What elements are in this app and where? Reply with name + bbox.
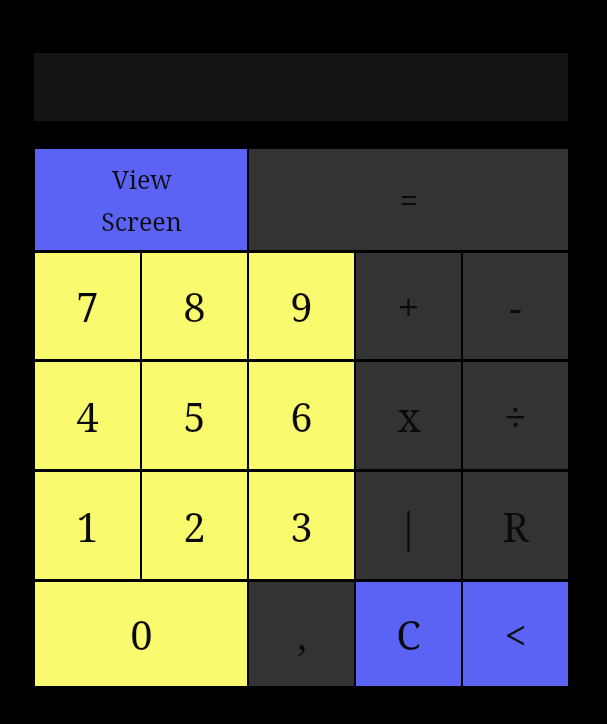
button[interactable]: x	[356, 362, 461, 469]
button[interactable]: 7	[35, 253, 140, 359]
button[interactable]: 6	[249, 362, 354, 469]
button[interactable]: View	[35, 149, 247, 250]
staticText: |	[397, 499, 420, 553]
staticText: 4	[76, 389, 99, 443]
button[interactable]: 4	[35, 362, 140, 469]
button[interactable]: 0	[35, 582, 247, 686]
button[interactable]: 8	[142, 253, 247, 359]
staticText: 7	[76, 279, 99, 333]
staticText: 1	[76, 499, 99, 553]
button[interactable]: 2	[142, 472, 247, 579]
staticText: -	[509, 279, 522, 333]
staticText: R	[502, 499, 529, 553]
button[interactable]: 1	[35, 472, 140, 579]
staticText: ÷	[504, 389, 527, 443]
staticText: 3	[290, 499, 313, 553]
staticText: Screen	[101, 204, 182, 238]
staticText: ,	[297, 607, 307, 661]
button[interactable]: 5	[142, 362, 247, 469]
staticText: =	[399, 177, 419, 223]
staticText: C	[396, 607, 421, 661]
staticText: 9	[290, 279, 313, 333]
button[interactable]: R	[463, 472, 568, 579]
staticText: 2	[183, 499, 206, 553]
staticText: <	[504, 607, 527, 661]
button[interactable]: 3	[249, 472, 354, 579]
button[interactable]: Clear	[356, 582, 461, 686]
staticText: 6	[290, 389, 313, 443]
staticText: +	[397, 279, 420, 333]
button[interactable]: 9	[249, 253, 354, 359]
button[interactable]: Backspace	[463, 582, 568, 686]
staticText: View	[112, 162, 172, 196]
staticText: 8	[183, 279, 206, 333]
staticText: x	[397, 389, 421, 443]
button[interactable]: |	[356, 472, 461, 579]
staticText: 0	[130, 607, 153, 661]
staticText: 5	[183, 389, 206, 443]
